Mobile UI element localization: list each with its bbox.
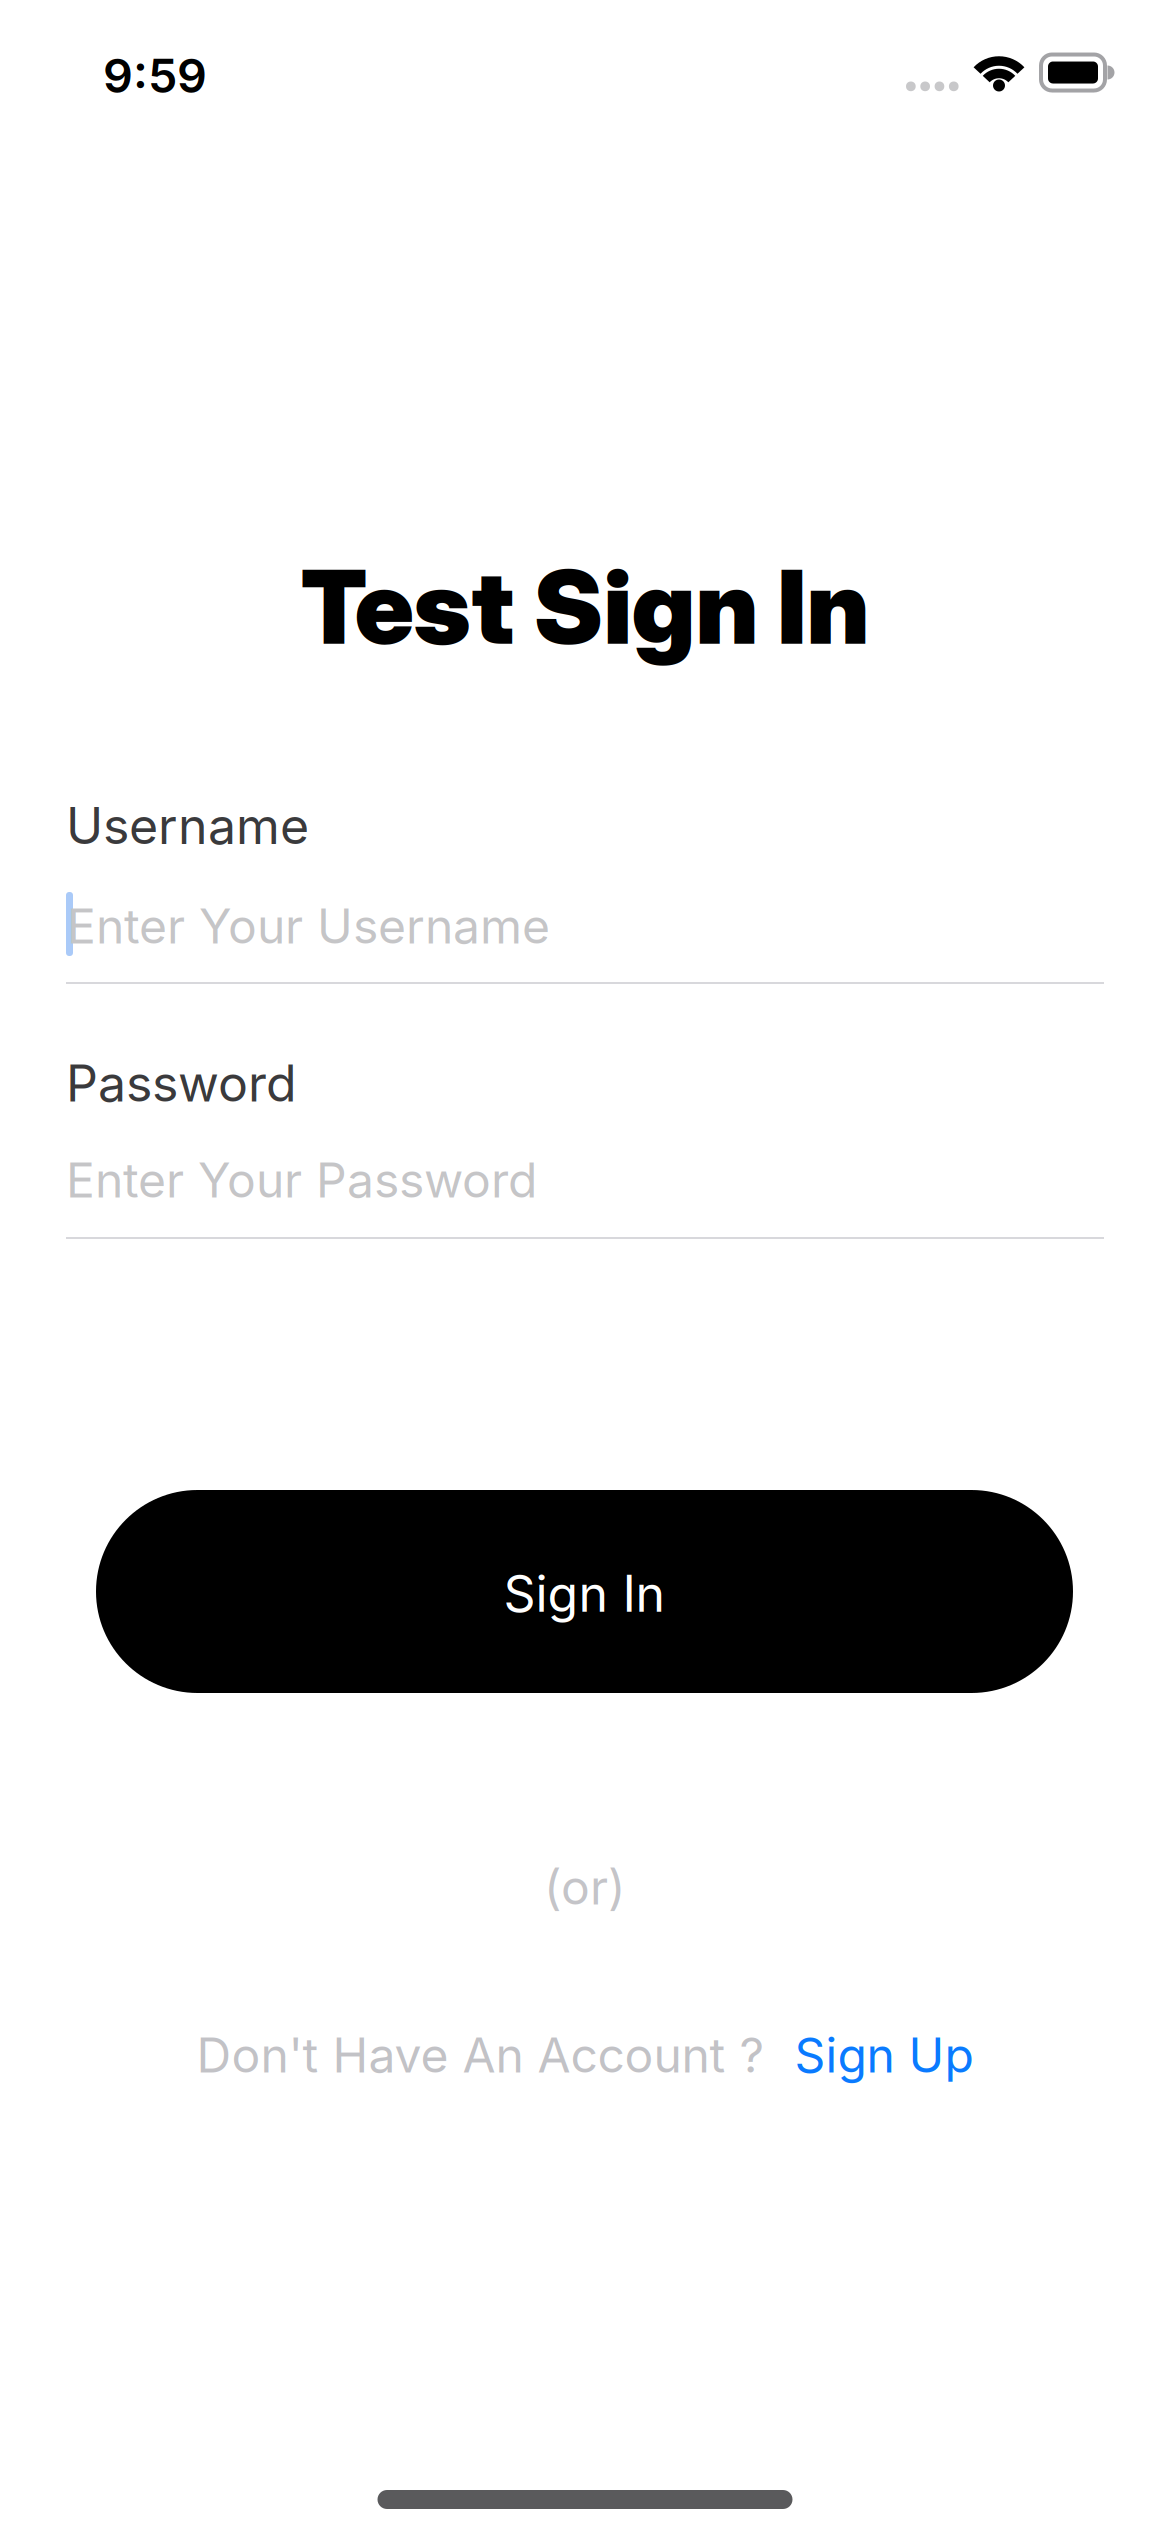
staticText: Sign In — [503, 1563, 665, 1624]
staticText: (or) — [544, 1858, 626, 1916]
staticText: Enter Your Username — [67, 897, 550, 955]
staticText: Password — [66, 1053, 297, 1113]
staticText: Username — [66, 795, 309, 856]
button[interactable]: Sign Up — [794, 2026, 973, 2084]
staticText: 9:59 — [103, 47, 207, 104]
button[interactable]: Enter Your Username — [0, 874, 1170, 994]
staticText: Sign Up — [794, 2026, 973, 2084]
button[interactable]: Enter Your Password — [0, 1128, 1170, 1248]
staticText: Test Sign In — [300, 545, 869, 668]
button[interactable]: Sign In — [96, 1490, 1073, 1693]
staticText: Don't Have An Account ? — [196, 2026, 764, 2084]
staticText: Enter Your Password — [66, 1151, 537, 1209]
